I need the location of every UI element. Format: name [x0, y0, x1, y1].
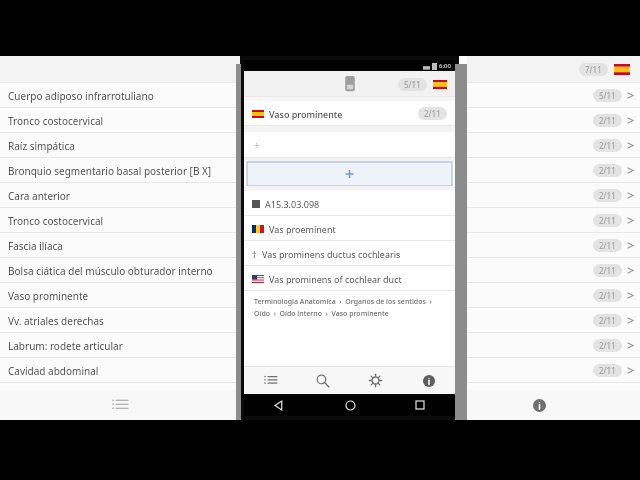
- button[interactable]: Cara anterior: [0, 183, 240, 208]
- staticText: Raíz simpática: [8, 139, 75, 153]
- button[interactable]: Add: [247, 162, 452, 186]
- button[interactable]: Settings: [349, 367, 402, 394]
- staticText: 2/11: [599, 340, 616, 351]
- staticText: 5/11: [404, 79, 421, 90]
- button[interactable]: Vaso prominente: [244, 101, 455, 126]
- button[interactable]: 5/11: [467, 83, 640, 108]
- staticText: 2/11: [599, 165, 616, 176]
- button[interactable]: Home: [315, 394, 385, 416]
- button[interactable]: 2/11: [467, 183, 640, 208]
- button[interactable]: 2/11: [467, 308, 640, 333]
- staticText: Cara anterior: [8, 189, 70, 203]
- button[interactable]: Cavidad abdominal: [0, 358, 240, 383]
- button[interactable]: A15.3.03.098: [244, 191, 455, 216]
- button[interactable]: Info: [402, 367, 455, 394]
- button[interactable]: Vv. atriales derechas: [0, 308, 240, 333]
- staticText: 2/11: [599, 140, 616, 151]
- button[interactable]: Info: [533, 399, 546, 412]
- button[interactable]: Vas proeminent: [244, 216, 455, 241]
- button[interactable]: Vas prominens of cochlear duct: [244, 266, 455, 291]
- staticText: Cavidad abdominal: [8, 364, 99, 378]
- button[interactable]: Back: [244, 394, 315, 416]
- button[interactable]: 2/11: [467, 283, 640, 308]
- staticText: 2/11: [599, 190, 616, 201]
- staticText: 2/11: [599, 215, 616, 226]
- staticText: †: [252, 248, 257, 260]
- staticText: +: [254, 138, 260, 152]
- staticText: Vaso prominente: [269, 108, 343, 120]
- button[interactable]: Bronquio segmentario basal posterior [B …: [0, 158, 240, 183]
- staticText: Cuerpo adiposo infrarrotuliano: [8, 89, 154, 103]
- button[interactable]: Document: [342, 76, 358, 92]
- button[interactable]: Recents: [385, 394, 455, 416]
- button[interactable]: 2/11: [467, 208, 640, 233]
- staticText: 2/11: [599, 315, 616, 326]
- button[interactable]: †: [244, 241, 455, 266]
- staticText: Vas prominens ductus cochlearis: [262, 248, 401, 260]
- staticText: 2/11: [599, 290, 616, 301]
- staticText: Tronco costocervical: [8, 114, 104, 128]
- button[interactable]: Tronco costocervical: [0, 108, 240, 133]
- button[interactable]: 2/11: [467, 358, 640, 383]
- staticText: 2/11: [599, 240, 616, 251]
- button[interactable]: List: [244, 367, 296, 394]
- button[interactable]: 2/11: [467, 233, 640, 258]
- staticText: Terminologia Anatomica › Organos de los …: [254, 297, 443, 318]
- button[interactable]: Raíz simpática: [0, 133, 240, 158]
- staticText: Bolsa ciática del músculo obturador inte…: [8, 264, 213, 278]
- button[interactable]: Labrum: rodete articular: [0, 333, 240, 358]
- staticText: Labrum: rodete articular: [8, 339, 123, 353]
- staticText: 2/11: [599, 265, 616, 276]
- button[interactable]: 2/11: [467, 333, 640, 358]
- staticText: Fascia ilíaca: [8, 239, 63, 253]
- staticText: 6:00: [439, 62, 451, 70]
- staticText: Vaso prominente: [8, 289, 89, 303]
- button[interactable]: +: [244, 132, 455, 158]
- staticText: 2/11: [599, 115, 616, 126]
- staticText: A15.3.03.098: [265, 198, 320, 210]
- staticText: Tronco costocervical: [8, 214, 104, 228]
- staticText: 7/11: [585, 64, 602, 75]
- staticText: 2/11: [424, 108, 441, 119]
- button[interactable]: List: [112, 397, 128, 413]
- staticText: 2/11: [599, 365, 616, 376]
- staticText: Bronquio segmentario basal posterior [B …: [8, 164, 212, 178]
- button[interactable]: Vaso prominente: [0, 283, 240, 308]
- staticText: Vv. atriales derechas: [8, 314, 104, 328]
- button[interactable]: Bolsa ciática del músculo obturador inte…: [0, 258, 240, 283]
- button[interactable]: Tronco costocervical: [0, 208, 240, 233]
- staticText: 5/11: [599, 90, 616, 101]
- button[interactable]: Fascia ilíaca: [0, 233, 240, 258]
- button[interactable]: 2/11: [467, 133, 640, 158]
- button[interactable]: Search: [296, 367, 349, 394]
- button[interactable]: 2/11: [467, 158, 640, 183]
- staticText: Vas proeminent: [269, 223, 336, 235]
- staticText: Vas prominens of cochlear duct: [269, 273, 402, 285]
- button[interactable]: 2/11: [467, 258, 640, 283]
- button[interactable]: 2/11: [467, 108, 640, 133]
- button[interactable]: Cuerpo adiposo infrarrotuliano: [0, 83, 240, 108]
